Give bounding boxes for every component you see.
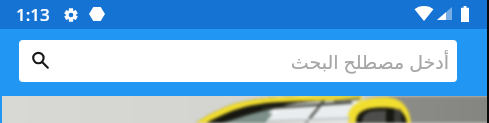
staticText: 1:13 (16, 3, 50, 26)
other: Search (31, 51, 52, 72)
button[interactable]: Search (19, 40, 457, 82)
button[interactable]: Settings (64, 8, 78, 22)
staticText: أدخل مصطلح البحث (19, 49, 449, 75)
